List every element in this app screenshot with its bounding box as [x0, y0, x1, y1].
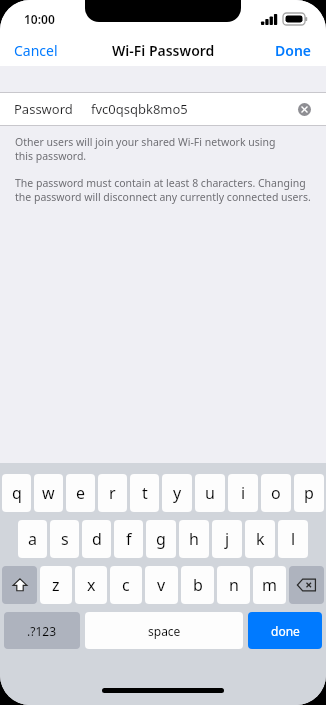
staticText: u: [205, 482, 215, 504]
button[interactable]: h: [179, 520, 209, 558]
staticText: f: [126, 528, 132, 550]
staticText: Done: [275, 41, 312, 60]
staticText: r: [109, 482, 116, 504]
staticText: s: [61, 528, 69, 550]
button[interactable]: Clear text: [294, 99, 314, 119]
button[interactable]: w: [34, 474, 63, 512]
staticText: Wi-Fi Password: [112, 41, 215, 60]
button[interactable]: g: [146, 520, 176, 558]
button[interactable]: x: [75, 566, 107, 604]
button[interactable]: n: [217, 566, 250, 604]
button[interactable]: b: [181, 566, 214, 604]
button[interactable]: z: [40, 566, 72, 604]
button[interactable]: Done: [261, 37, 326, 64]
button[interactable]: t: [130, 474, 159, 512]
staticText: 10:00: [24, 11, 55, 27]
staticText: b: [193, 574, 203, 596]
staticText: t: [142, 482, 148, 504]
button[interactable]: i: [228, 474, 258, 512]
staticText: p: [304, 482, 314, 504]
staticText: m: [262, 574, 277, 596]
button[interactable]: e: [66, 474, 95, 512]
staticText: Cancel: [14, 41, 58, 60]
staticText: g: [156, 528, 166, 550]
button[interactable]: c: [110, 566, 142, 604]
staticText: d: [92, 528, 102, 550]
staticText: The password must contain at least 8 cha…: [15, 176, 311, 204]
staticText: n: [229, 574, 239, 596]
staticText: h: [189, 528, 199, 550]
button[interactable]: k: [245, 520, 275, 558]
staticText: a: [28, 528, 37, 550]
button[interactable]: v: [145, 566, 178, 604]
button[interactable]: o: [261, 474, 291, 512]
button[interactable]: u: [195, 474, 225, 512]
staticText: space: [148, 623, 181, 639]
staticText: y: [173, 482, 182, 504]
staticText: x: [87, 574, 96, 596]
staticText: Password: [14, 100, 73, 118]
staticText: e: [76, 482, 86, 504]
button[interactable]: Cancel: [0, 37, 72, 64]
button[interactable]: a: [18, 520, 47, 558]
button[interactable]: y: [162, 474, 192, 512]
staticText: j: [225, 528, 230, 550]
staticText: .?123: [27, 623, 57, 639]
button[interactable]: s: [50, 520, 79, 558]
button[interactable]: j: [212, 520, 242, 558]
button[interactable]: space: [85, 612, 243, 649]
staticText: w: [42, 482, 55, 504]
button[interactable]: Password: [0, 93, 326, 125]
staticText: k: [256, 528, 265, 550]
staticText: i: [241, 482, 246, 504]
staticText: v: [157, 574, 166, 596]
staticText: fvc0qsqbk8mo5: [91, 100, 188, 118]
button[interactable]: Backspace: [289, 566, 324, 604]
button[interactable]: Shift: [2, 566, 37, 604]
button[interactable]: l: [278, 520, 308, 558]
staticText: c: [122, 574, 130, 596]
button[interactable]: done: [248, 612, 322, 649]
button[interactable]: r: [98, 474, 127, 512]
button[interactable]: f: [114, 520, 143, 558]
button[interactable]: q: [2, 474, 31, 512]
button[interactable]: d: [82, 520, 111, 558]
button[interactable]: .?123: [4, 612, 80, 649]
staticText: done: [271, 623, 300, 639]
button[interactable]: p: [294, 474, 324, 512]
staticText: q: [12, 482, 22, 504]
staticText: o: [271, 482, 281, 504]
staticText: l: [291, 528, 296, 550]
staticText: Other users will join your shared Wi-Fi …: [15, 135, 276, 163]
staticText: z: [52, 574, 60, 596]
button[interactable]: m: [253, 566, 286, 604]
